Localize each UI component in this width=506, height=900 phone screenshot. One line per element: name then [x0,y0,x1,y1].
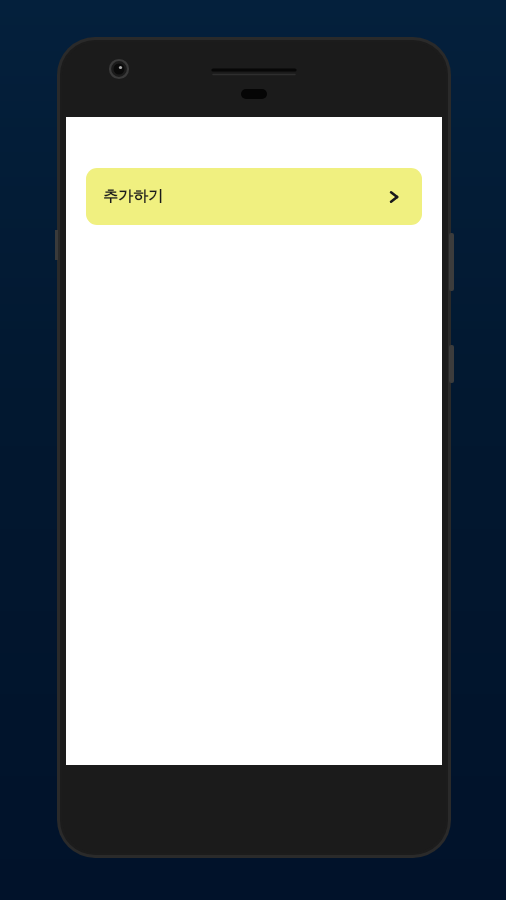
button[interactable]: 추가하기 [86,168,422,225]
other: Open [387,188,405,206]
staticText: 추가하기 [103,187,163,206]
